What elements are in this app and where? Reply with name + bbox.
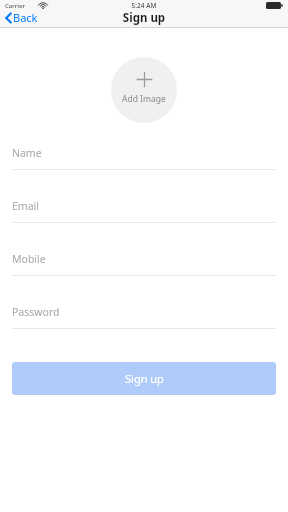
staticText: 5:24 AM	[0, 1, 288, 10]
button[interactable]: Back	[2, 9, 40, 26]
staticText: Carrier	[5, 2, 25, 10]
button[interactable]: Name	[12, 140, 276, 170]
button[interactable]: Add Image	[111, 57, 177, 123]
staticText: Sign up	[125, 371, 164, 386]
button[interactable]: Email	[12, 193, 276, 223]
staticText: Add Image	[122, 93, 166, 105]
staticText: Sign up	[0, 10, 288, 26]
staticText: Email	[12, 199, 39, 213]
button[interactable]: Password	[12, 299, 276, 329]
button[interactable]: Mobile	[12, 246, 276, 276]
staticText: Back	[13, 10, 38, 25]
button[interactable]: Sign up	[12, 362, 276, 395]
staticText: Password	[12, 305, 60, 319]
staticText: Name	[12, 146, 42, 160]
staticText: Mobile	[12, 252, 46, 266]
